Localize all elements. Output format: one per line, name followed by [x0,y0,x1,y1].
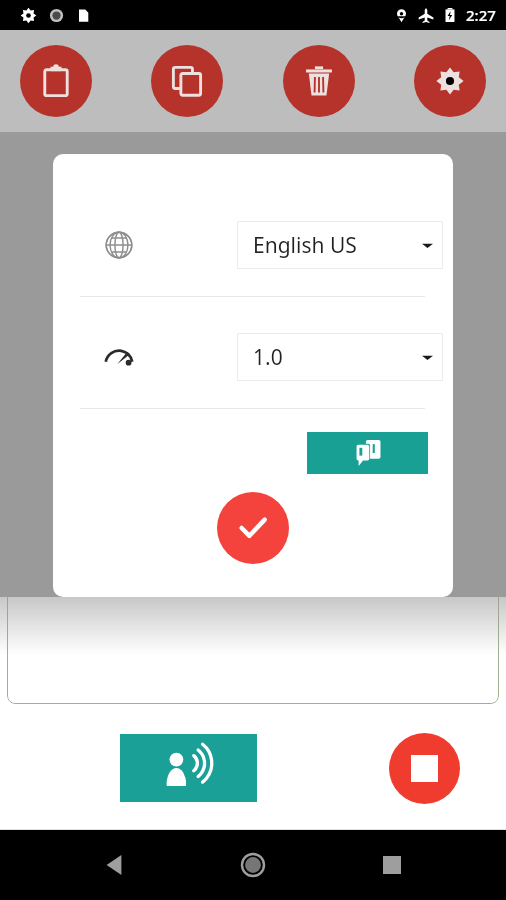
button[interactable]: Delete [283,45,355,117]
button[interactable]: Home [229,841,277,889]
button[interactable]: Speak [120,734,257,802]
staticText: English US [253,231,357,260]
button[interactable]: Stop [389,733,460,804]
button[interactable]: Confirm [217,492,289,564]
staticText: 2:27 [466,5,496,25]
button[interactable]: Translate [307,432,428,474]
button[interactable]: 1.0 [237,333,443,381]
button[interactable]: Settings [414,45,486,117]
staticText: 1.0 [253,343,283,372]
button[interactable]: Back [91,841,139,889]
button[interactable]: Copy [151,45,223,117]
button[interactable]: English US [237,221,443,269]
button[interactable]: Recents [368,841,416,889]
button[interactable]: Paste [20,45,92,117]
